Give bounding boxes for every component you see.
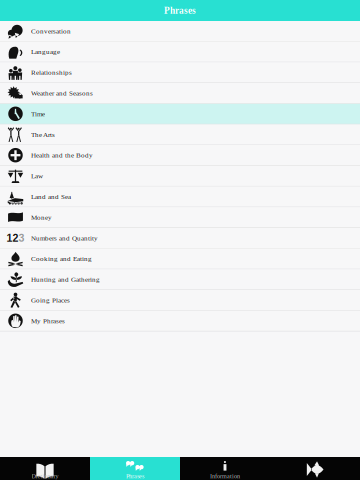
button[interactable]: Dictionary — [0, 457, 90, 480]
staticText: Conversation — [31, 27, 71, 35]
button[interactable]: Weather and Seasons — [0, 83, 360, 104]
staticText: Phrases — [164, 5, 196, 16]
staticText: Relationships — [31, 68, 72, 76]
button[interactable]: Relationships — [0, 62, 360, 83]
staticText: Dictionary — [31, 473, 58, 480]
button[interactable]: The Arts — [0, 124, 360, 145]
staticText: Hunting and Gathering — [31, 275, 100, 283]
staticText: Cooking and Eating — [31, 255, 92, 263]
button[interactable]: Going Places — [0, 290, 360, 311]
button[interactable]: Cooking and Eating — [0, 249, 360, 269]
staticText: Health and the Body — [31, 151, 93, 159]
button[interactable]: Conversation — [0, 21, 360, 42]
staticText: Money — [31, 213, 52, 221]
button[interactable]: Money — [0, 207, 360, 228]
staticText: Phrases — [126, 473, 144, 479]
button[interactable]: Law — [0, 166, 360, 187]
staticText: Land and Sea — [31, 193, 71, 200]
button[interactable]: Land and Sea — [0, 187, 360, 207]
staticText: 12 — [6, 232, 18, 244]
staticText: Numbers and Quantity — [31, 234, 98, 242]
staticText: Language — [31, 48, 60, 56]
button[interactable]: My Phrases — [0, 311, 360, 331]
staticText: Time — [31, 110, 45, 118]
button[interactable]: 12 — [0, 228, 360, 249]
button[interactable]: Health and the Body — [0, 145, 360, 166]
staticText: 3 — [18, 232, 24, 244]
button[interactable]: Language — [0, 42, 360, 62]
button[interactable]: Translate — [270, 457, 360, 480]
staticText: Law — [31, 172, 43, 180]
button[interactable]: Time — [0, 104, 360, 124]
staticText: Weather and Seasons — [31, 89, 93, 97]
staticText: Information — [210, 473, 240, 479]
button[interactable]: Information — [180, 457, 270, 480]
staticText: The Arts — [31, 131, 55, 138]
staticText: Going Places — [31, 296, 70, 304]
button[interactable]: Phrases — [90, 457, 180, 480]
staticText: My Phrases — [31, 317, 65, 325]
button[interactable]: Hunting and Gathering — [0, 269, 360, 290]
